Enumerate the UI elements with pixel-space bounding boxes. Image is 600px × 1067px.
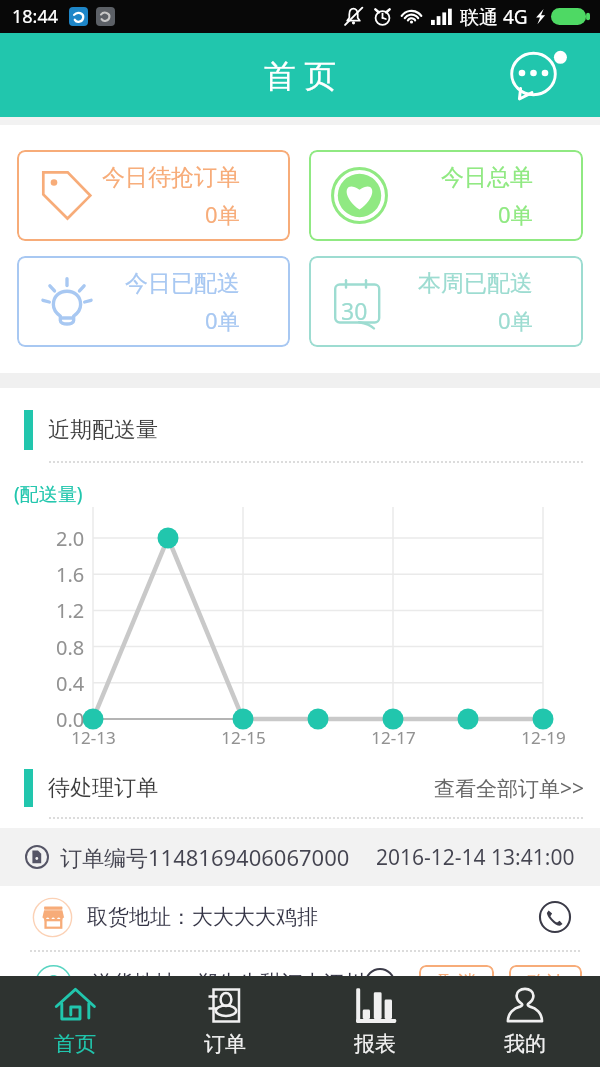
- staticText: 0.0: [56, 706, 85, 733]
- staticText: 12-19: [521, 726, 566, 749]
- button[interactable]: 确认: [509, 965, 582, 1001]
- staticText: 30: [341, 295, 368, 326]
- staticText: 待处理订单: [48, 774, 158, 802]
- staticText: 12-13: [71, 726, 116, 749]
- staticText: 0.4: [56, 670, 85, 697]
- button[interactable]: 报表: [300, 976, 450, 1067]
- button[interactable]: 查看全部订单>>: [434, 774, 585, 803]
- button[interactable]: 订单: [150, 976, 300, 1067]
- staticText: 0单: [205, 199, 240, 229]
- button[interactable]: 取货地址：: [0, 886, 600, 948]
- staticText: 12-17: [371, 726, 416, 749]
- staticText: 0.8: [56, 634, 85, 661]
- staticText: 订单编号1148169406067000: [60, 842, 350, 872]
- button[interactable]: Messages: [503, 45, 571, 105]
- staticText: 2016-12-14 13:41:00: [376, 843, 575, 872]
- staticText: 12-15: [221, 726, 266, 749]
- staticText: 今日已配送: [125, 269, 240, 298]
- button[interactable]: 今日待抢订单: [17, 150, 290, 241]
- staticText: 近期配送量: [48, 416, 158, 444]
- button[interactable]: 订单编号1148169406067000: [0, 828, 600, 886]
- staticText: (配送量): [14, 481, 83, 507]
- staticText: 取货地址：: [87, 904, 192, 930]
- staticText: 订单: [204, 1031, 246, 1057]
- staticText: 送货地址：郑先生甜订大江川: [92, 970, 365, 996]
- staticText: 首 页: [264, 53, 337, 97]
- staticText: 2.0: [56, 525, 85, 552]
- staticText: 0单: [498, 305, 533, 335]
- button[interactable]: 首页: [0, 976, 150, 1067]
- button[interactable]: 取消: [419, 965, 494, 1001]
- staticText: 本周已配送: [418, 269, 533, 298]
- button[interactable]: 今日已配送: [17, 256, 290, 347]
- button[interactable]: 今日总单: [309, 150, 583, 241]
- button[interactable]: 送货地址：郑先生甜订大江川: [0, 952, 600, 1014]
- staticText: 查看全部订单>>: [434, 774, 585, 803]
- staticText: 0单: [498, 199, 533, 229]
- staticText: 我的: [504, 1031, 546, 1057]
- button[interactable]: 我的: [450, 976, 600, 1067]
- staticText: 今日总单: [441, 163, 533, 192]
- staticText: 1.2: [56, 597, 85, 624]
- staticText: 今日待抢订单: [102, 163, 240, 192]
- staticText: 大大大大鸡排: [192, 904, 318, 930]
- staticText: 联通 4G: [460, 4, 528, 30]
- staticText: 1.6: [56, 561, 85, 588]
- staticText: 首页: [54, 1031, 96, 1057]
- staticText: 取消: [438, 971, 476, 995]
- staticText: 0单: [205, 305, 240, 335]
- staticText: 18:44: [12, 4, 59, 29]
- staticText: 报表: [354, 1031, 396, 1057]
- staticText: 确认: [527, 971, 565, 995]
- button[interactable]: 30: [309, 256, 583, 347]
- button[interactable]: Call: [539, 901, 571, 933]
